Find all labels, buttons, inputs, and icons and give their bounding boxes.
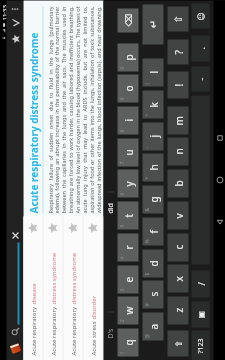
- button[interactable]: .: [191, 35, 209, 61]
- button[interactable]: Shift: [167, 6, 188, 31]
- button[interactable]: Settings: [191, 301, 209, 327]
- button[interactable]: e: [117, 265, 138, 293]
- button[interactable]: x: [167, 264, 188, 292]
- staticText: .: [194, 46, 206, 49]
- button[interactable]: c: [167, 233, 188, 261]
- button[interactable]: y: [117, 169, 138, 197]
- staticText: 8: [118, 129, 125, 132]
- staticText: l: [146, 70, 160, 73]
- staticText: h: [146, 163, 160, 170]
- staticText: z: [171, 307, 185, 312]
- button[interactable]: Home: [213, 173, 225, 187]
- button[interactable]: -: [191, 66, 209, 91]
- button[interactable]: Search: [8, 324, 22, 338]
- staticText: v: [171, 212, 185, 218]
- button[interactable]: Recents: [213, 131, 225, 145]
- button[interactable]: Pronounce: [7, 15, 23, 31]
- button[interactable]: i: [117, 106, 138, 134]
- staticText: g: [146, 195, 160, 202]
- button[interactable]: ?: [167, 39, 188, 64]
- staticText: %: [143, 238, 150, 243]
- staticText: 2: [118, 319, 125, 322]
- button[interactable]: r: [117, 233, 138, 261]
- staticText: Acute respiratory: [29, 304, 37, 355]
- staticText: Acute respiratory distress syndrome: [26, 31, 40, 213]
- staticText: did: [105, 202, 115, 213]
- staticText: 7: [118, 161, 125, 164]
- staticText: f: [146, 229, 160, 233]
- staticText: -: [194, 77, 206, 80]
- button[interactable]: n: [167, 137, 188, 165]
- button[interactable]: u: [117, 138, 138, 166]
- staticText: 4: [118, 256, 125, 259]
- button[interactable]: h: [142, 153, 163, 181]
- button[interactable]: Acute respiratory: [43, 216, 62, 360]
- button[interactable]: !: [167, 71, 188, 98]
- button[interactable]: Acute respiratory: [23, 216, 42, 360]
- button[interactable]: w: [117, 296, 138, 324]
- staticText: distress syndrome: [49, 252, 57, 304]
- button[interactable]: g: [142, 185, 163, 213]
- staticText: 5: [118, 224, 125, 227]
- button[interactable]: Symbols: [191, 330, 209, 360]
- staticText: a: [146, 323, 160, 329]
- staticText: Acute stress: [89, 319, 97, 355]
- staticText: distress syndrome: [69, 252, 77, 304]
- button[interactable]: Acute stress: [83, 216, 102, 360]
- staticText: !: [171, 83, 185, 86]
- staticText: i: [121, 118, 135, 121]
- staticText: 11:33: [0, 4, 6, 20]
- staticText: 6: [118, 192, 125, 195]
- staticText: m: [171, 115, 185, 125]
- staticText: $: [143, 272, 150, 275]
- staticText: e: [121, 276, 135, 282]
- staticText: 1: [118, 351, 125, 354]
- staticText: ▣: [196, 310, 205, 318]
- button[interactable]: t: [117, 201, 138, 229]
- staticText: D's: [105, 328, 115, 338]
- button[interactable]: b: [167, 169, 188, 197]
- staticText: disease: [29, 282, 37, 304]
- button[interactable]: Shift: [167, 330, 188, 356]
- staticText: b: [171, 179, 185, 186]
- button[interactable]: z: [167, 296, 188, 324]
- button[interactable]: [6, 242, 23, 324]
- staticText: q: [121, 338, 135, 345]
- staticText: ?123: [195, 337, 205, 353]
- button[interactable]: o: [117, 74, 138, 102]
- staticText: @: [143, 333, 150, 338]
- button[interactable]: Backspace: [117, 8, 138, 32]
- staticText: ?: [171, 49, 185, 54]
- button[interactable]: l: [142, 58, 163, 86]
- staticText: ⌫: [123, 13, 133, 26]
- staticText: t: [121, 213, 135, 217]
- button[interactable]: Acute respiratory: [63, 216, 82, 360]
- staticText: k: [146, 101, 160, 107]
- staticText: x: [171, 275, 185, 281]
- button[interactable]: a: [142, 312, 163, 340]
- staticText: ↵: [147, 19, 159, 28]
- button[interactable]: m: [167, 106, 188, 134]
- button[interactable]: Enter: [142, 4, 163, 44]
- button[interactable]: q: [117, 328, 138, 356]
- button[interactable]: Back: [213, 215, 225, 229]
- button[interactable]: Clear search: [8, 228, 22, 242]
- button[interactable]: More options: [8, 2, 21, 15]
- button[interactable]: v: [167, 201, 188, 229]
- button[interactable]: /: [191, 270, 209, 297]
- button[interactable]: s: [142, 280, 163, 308]
- staticText: #: [143, 302, 150, 306]
- button[interactable]: Emoji: [191, 3, 209, 28]
- button[interactable]: Favorite: [7, 31, 23, 47]
- button[interactable]: j: [142, 122, 163, 150]
- staticText: ⇧: [172, 14, 184, 23]
- button[interactable]: App home: [7, 341, 22, 356]
- staticText: y: [121, 180, 135, 186]
- button[interactable]: f: [142, 217, 163, 245]
- button[interactable]: k: [142, 90, 163, 118]
- staticText: 0: [118, 66, 125, 69]
- staticText: *: [143, 176, 150, 179]
- button[interactable]: d: [142, 249, 163, 277]
- button[interactable]: p: [117, 43, 138, 71]
